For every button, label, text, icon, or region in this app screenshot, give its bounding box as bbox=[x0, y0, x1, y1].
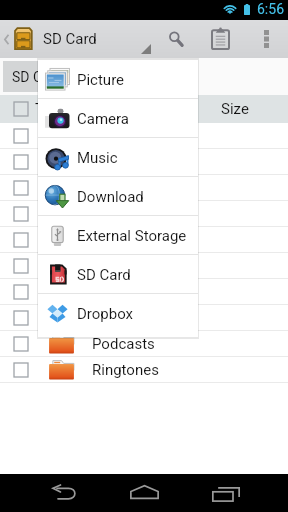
staticText: Music bbox=[77, 149, 118, 167]
button[interactable]: More options bbox=[256, 20, 276, 58]
button[interactable]: Music bbox=[0, 253, 288, 279]
staticText: Dropbox bbox=[77, 305, 134, 323]
staticText: Type bbox=[35, 100, 67, 118]
button[interactable]: Music bbox=[38, 138, 198, 177]
button[interactable]: Dropbox bbox=[38, 294, 198, 333]
button[interactable]: Show navigation bbox=[134, 20, 158, 58]
staticText: Movies bbox=[92, 231, 141, 249]
button[interactable]: Podcasts bbox=[0, 331, 288, 357]
button[interactable]: External Storage bbox=[38, 216, 198, 255]
staticText: Alarms bbox=[92, 127, 140, 145]
button[interactable]: SD Card bbox=[3, 61, 79, 92]
button[interactable]: Download bbox=[0, 201, 288, 227]
staticText: DCIM bbox=[92, 179, 129, 197]
staticText: Android bbox=[92, 153, 145, 171]
staticText: Pictures bbox=[92, 309, 147, 327]
staticText: Download bbox=[92, 205, 159, 223]
staticText: Download bbox=[77, 188, 144, 206]
button[interactable]: Clipboard bbox=[206, 20, 234, 58]
staticText: Notifications bbox=[92, 283, 178, 301]
button[interactable]: Navigate up bbox=[0, 20, 12, 58]
staticText: SD Card bbox=[12, 69, 63, 85]
staticText: Podcasts bbox=[92, 335, 155, 353]
staticText: External Storage bbox=[77, 227, 187, 245]
button[interactable]: Home bbox=[120, 474, 168, 512]
button[interactable]: Recent apps bbox=[202, 474, 250, 512]
button[interactable]: Back bbox=[40, 474, 88, 512]
button[interactable]: Android bbox=[0, 149, 288, 175]
button[interactable]: Search bbox=[163, 20, 189, 58]
button[interactable]: Picture bbox=[38, 60, 198, 99]
staticText: Camera bbox=[77, 110, 129, 128]
button[interactable]: Alarms bbox=[0, 123, 288, 149]
button[interactable]: SD Card bbox=[38, 255, 198, 294]
button[interactable]: DCIM bbox=[0, 175, 288, 201]
staticText: 6:56 bbox=[257, 1, 284, 17]
staticText: SD Card bbox=[77, 266, 131, 284]
button[interactable]: Camera bbox=[38, 99, 198, 138]
staticText: SD Card bbox=[43, 30, 97, 48]
staticText: Music bbox=[92, 257, 133, 275]
button[interactable]: Movies bbox=[0, 227, 288, 253]
staticText: Ringtones bbox=[92, 361, 159, 379]
staticText: Picture bbox=[77, 71, 125, 89]
button[interactable]: Ringtones bbox=[0, 357, 288, 383]
button[interactable]: Type bbox=[0, 95, 288, 123]
button[interactable]: Pictures bbox=[0, 305, 288, 331]
staticText: Size bbox=[221, 100, 249, 118]
button[interactable]: Download bbox=[38, 177, 198, 216]
button[interactable]: Notifications bbox=[0, 279, 288, 305]
